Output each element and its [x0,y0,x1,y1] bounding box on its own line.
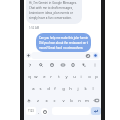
staticText: x [45,98,48,104]
button[interactable]: Add attachment [26,53,31,58]
button[interactable]: Enter [91,107,101,115]
button[interactable]: k [82,84,88,93]
button[interactable]: s [37,84,43,93]
button[interactable]: More [26,61,34,69]
button[interactable]: z [35,96,41,105]
button[interactable]: h [67,84,73,93]
staticText: i [80,74,82,80]
staticText: Can you help me make this joke funnier? … [39,36,88,49]
button[interactable]: Emoji [41,108,48,115]
staticText: h [69,86,72,92]
staticText: d [47,86,50,92]
staticText: q [28,74,31,80]
staticText: c [53,98,56,104]
button[interactable]: m [84,96,90,105]
staticText: u [73,74,76,80]
staticText: j [77,86,79,92]
button[interactable]: e [41,72,47,81]
staticText: p [95,74,98,80]
staticText: f [54,86,56,92]
button[interactable]: a [30,84,36,93]
button[interactable]: o [86,72,92,81]
button[interactable]: Shift [24,96,33,105]
button[interactable]: y [63,72,69,81]
button[interactable]: w [33,72,39,81]
staticText: s [39,86,42,92]
button[interactable]: GIF [59,61,67,69]
button[interactable]: i [78,72,84,81]
staticText: 1:52 AM [29,26,40,30]
staticText: ?123 [28,109,34,113]
staticText: z [37,98,39,104]
button[interactable]: Hi, I'm Gemini in Google Messages. Chat … [26,0,82,24]
button[interactable]: u [71,72,77,81]
button[interactable]: c [51,96,57,105]
staticText: o [88,74,91,80]
staticText: a [32,86,35,92]
button[interactable]: p [93,72,99,81]
staticText: n [78,98,81,104]
button[interactable]: Backspace [92,96,101,105]
button[interactable]: Symbols [26,107,36,115]
staticText: r [50,74,52,80]
button[interactable]: l [90,84,96,93]
button[interactable]: v [60,96,66,105]
button[interactable]: Search [37,61,45,69]
button[interactable]: g [60,84,66,93]
button[interactable]: Text message [31,52,100,59]
button[interactable]: Clipboard [69,61,77,69]
staticText: k [84,86,87,92]
staticText: m [85,98,89,104]
button[interactable]: Translate [80,61,88,69]
staticText: b [70,98,73,104]
button[interactable]: r [48,72,54,81]
button[interactable]: f [52,84,58,93]
button[interactable]: Stickers [48,61,56,69]
staticText: v [62,98,65,104]
button[interactable]: Comma [36,107,41,115]
staticText: y [65,74,68,80]
button[interactable]: Settings [91,61,99,69]
staticText: t [58,74,60,80]
staticText: l [92,86,94,92]
button[interactable]: j [75,84,81,93]
staticText: , [38,109,40,114]
button[interactable]: Attach photo [85,53,90,58]
button[interactable]: Can you help me make this joke funnier? … [36,33,91,52]
staticText: w [34,74,38,80]
staticText: e [43,74,46,80]
staticText: Hi, I'm Gemini in Google Messages. Chat … [29,1,77,20]
button[interactable]: n [76,96,82,105]
button[interactable]: x [43,96,49,105]
button[interactable]: Gemini [93,53,98,58]
button[interactable]: b [68,96,74,105]
staticText: g [62,86,65,92]
button[interactable]: q [26,72,32,81]
button[interactable]: d [45,84,51,93]
button[interactable]: t [56,72,62,81]
